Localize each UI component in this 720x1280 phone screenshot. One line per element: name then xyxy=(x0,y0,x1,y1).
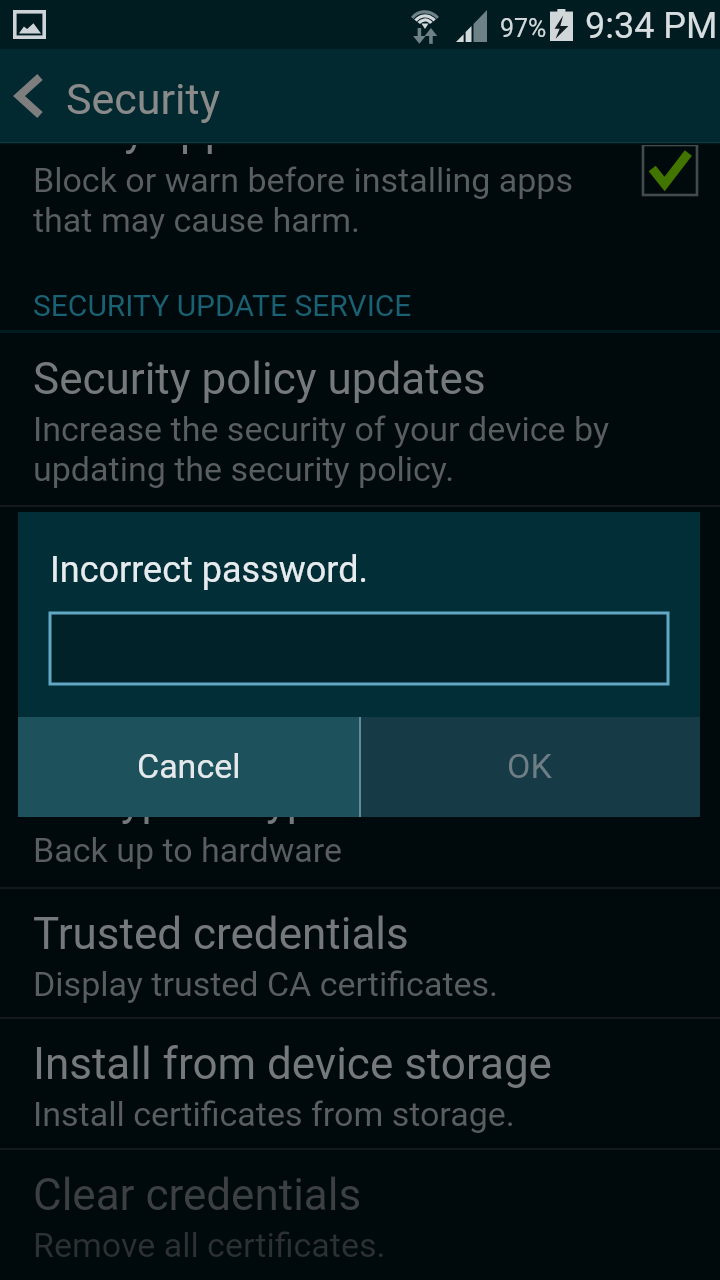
button[interactable]: Verify apps xyxy=(0,85,720,256)
staticText: Block or warn before installing apps xyxy=(33,160,573,200)
staticText: 9:34 PM xyxy=(585,5,718,47)
button[interactable]: Trusted credentials xyxy=(0,889,720,1019)
button[interactable]: Encryption type xyxy=(0,755,720,885)
staticText: Back up to hardware xyxy=(33,830,342,870)
staticText: Trusted credentials xyxy=(33,908,409,960)
staticText: Verify apps xyxy=(33,104,253,156)
staticText: Install certificates from storage. xyxy=(33,1094,515,1134)
staticText: Encryption type xyxy=(33,774,335,826)
staticText: updating the security policy. xyxy=(33,449,455,489)
staticText: OK xyxy=(507,746,552,786)
staticText: Remove all certificates. xyxy=(33,1225,386,1265)
staticText: Clear credentials xyxy=(33,1169,362,1221)
staticText: Security policy updates xyxy=(33,353,486,405)
staticText: Display trusted CA certificates. xyxy=(33,964,499,1004)
button[interactable]: Install from device storage xyxy=(0,1019,720,1149)
staticText: Incorrect password. xyxy=(50,549,368,591)
button[interactable]: Clear credentials xyxy=(0,1150,720,1280)
button[interactable]: Verify apps xyxy=(643,145,697,195)
button[interactable]: Cancel xyxy=(18,717,359,817)
button[interactable]: OK xyxy=(359,717,700,817)
staticText: Install from device storage xyxy=(33,1038,552,1090)
button[interactable]: Back xyxy=(0,49,60,142)
staticText: Increase the security of your device by xyxy=(33,409,609,449)
staticText: Cancel xyxy=(137,746,241,786)
staticText: 97% xyxy=(500,14,547,43)
button[interactable]: Security policy updates xyxy=(0,334,720,505)
staticText: Security xyxy=(66,74,220,124)
staticText: SECURITY UPDATE SERVICE xyxy=(33,288,412,323)
staticText: that may cause harm. xyxy=(33,200,361,240)
